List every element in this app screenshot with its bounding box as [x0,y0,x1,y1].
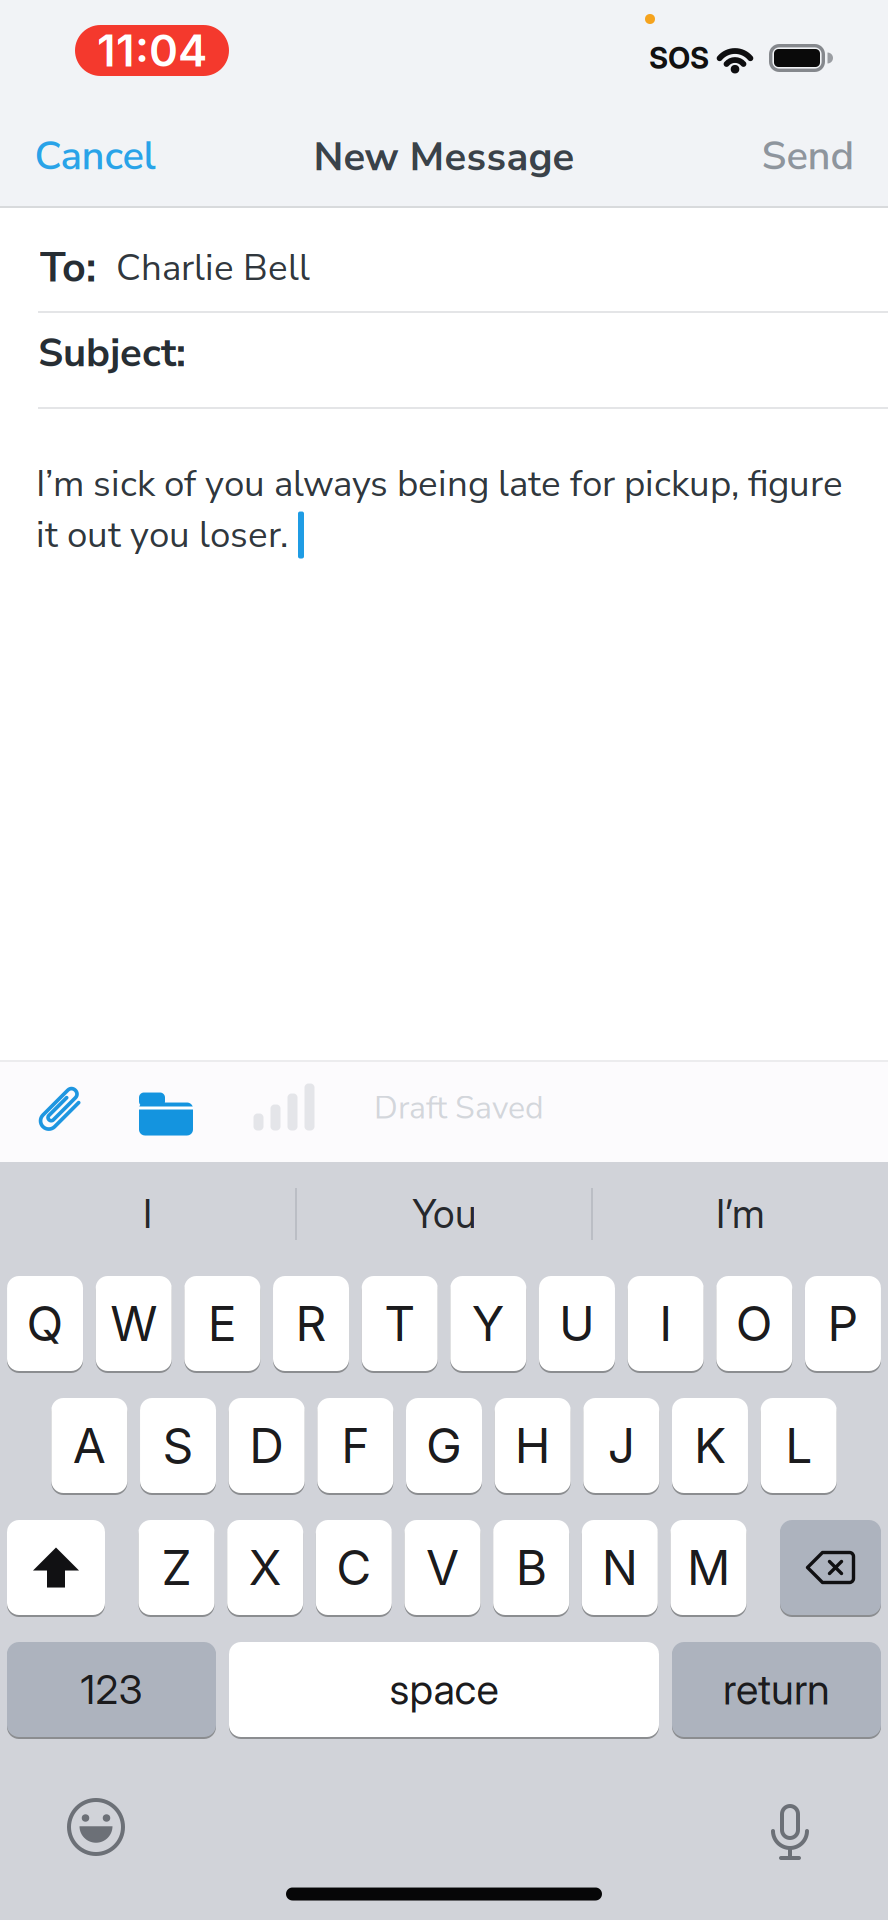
button[interactable]: T [362,1276,438,1371]
staticText: I [143,1191,152,1237]
button[interactable]: Cancel [34,129,155,183]
staticText: X [249,1538,282,1597]
button[interactable]: W [96,1276,172,1371]
button[interactable]: M [670,1520,746,1615]
button[interactable]: H [495,1398,571,1493]
staticText: I’m sick of you always being late for pi… [36,459,843,509]
staticText: You [412,1191,476,1237]
staticText: V [426,1538,459,1597]
staticText: I [659,1294,672,1353]
staticText: O [736,1294,773,1353]
staticText: K [694,1416,726,1475]
button[interactable]: G [406,1398,482,1493]
staticText: SOS [649,40,709,76]
button[interactable]: Z [138,1520,214,1615]
button[interactable]: Dictation [768,1799,812,1855]
button[interactable]: Send priority [253,1083,314,1130]
button[interactable]: I’m [593,1162,888,1266]
button[interactable]: V [404,1520,480,1615]
button[interactable]: L [761,1398,837,1493]
button[interactable]: You [297,1162,591,1266]
staticText: Q [26,1294,63,1353]
button[interactable]: P [805,1276,881,1371]
staticText: W [110,1294,157,1353]
button[interactable]: R [273,1276,349,1371]
button[interactable]: Subject: [0,208,888,268]
button[interactable]: A [51,1398,127,1493]
staticText: C [336,1538,371,1597]
button[interactable]: Shift [7,1520,105,1615]
button[interactable]: Move to folder [139,1087,193,1130]
button[interactable]: E [184,1276,260,1371]
button[interactable]: B [493,1520,569,1615]
button[interactable]: return [672,1642,881,1737]
staticText: D [249,1416,284,1475]
staticText: R [295,1294,326,1353]
staticText: T [384,1294,415,1353]
staticText: J [608,1416,635,1475]
button[interactable]: Send [761,129,854,183]
staticText: I’m [716,1191,765,1237]
button[interactable]: X [227,1520,303,1615]
button[interactable]: I [0,1162,295,1266]
staticText: M [687,1538,730,1597]
staticText: F [341,1416,369,1475]
staticText: S [162,1416,193,1475]
staticText: A [73,1416,106,1475]
button[interactable]: U [539,1276,615,1371]
button[interactable]: 123 [7,1642,216,1737]
staticText: N [602,1538,638,1597]
staticText: E [208,1294,237,1353]
staticText: New Message [313,130,574,184]
staticText: L [785,1416,812,1475]
staticText: B [516,1538,547,1597]
button[interactable]: To: [0,208,888,268]
button[interactable]: Emoji [67,1798,125,1856]
staticText: Y [472,1294,505,1353]
staticText: P [827,1294,858,1353]
staticText: Charlie Bell [116,243,310,293]
staticText: Cancel [34,129,155,183]
staticText: Send [761,129,854,183]
staticText: To: [40,240,96,296]
staticText: it out you loser. [36,510,288,560]
button[interactable]: K [672,1398,748,1493]
button[interactable]: I [628,1276,704,1371]
button[interactable]: N [582,1520,658,1615]
button[interactable]: Y [450,1276,526,1371]
staticText: return [723,1664,830,1714]
button[interactable]: space [229,1642,659,1737]
staticText: Z [161,1538,191,1597]
button[interactable]: Return to call [75,24,229,77]
button[interactable]: C [316,1520,392,1615]
staticText: Draft Saved [374,1086,544,1130]
button[interactable]: D [229,1398,305,1493]
button[interactable]: J [583,1398,659,1493]
button[interactable]: S [140,1398,216,1493]
staticText: U [559,1294,595,1353]
button[interactable]: F [317,1398,393,1493]
staticText: 123 [80,1665,142,1714]
button[interactable]: Attach file [33,1081,89,1137]
staticText: G [426,1416,462,1475]
button[interactable]: Q [7,1276,83,1371]
staticText: space [389,1664,498,1714]
staticText: Subject: [38,326,186,380]
button[interactable]: Delete [780,1520,881,1615]
staticText: H [515,1416,551,1475]
button[interactable]: O [716,1276,792,1371]
staticText: 11:04 [97,24,207,77]
